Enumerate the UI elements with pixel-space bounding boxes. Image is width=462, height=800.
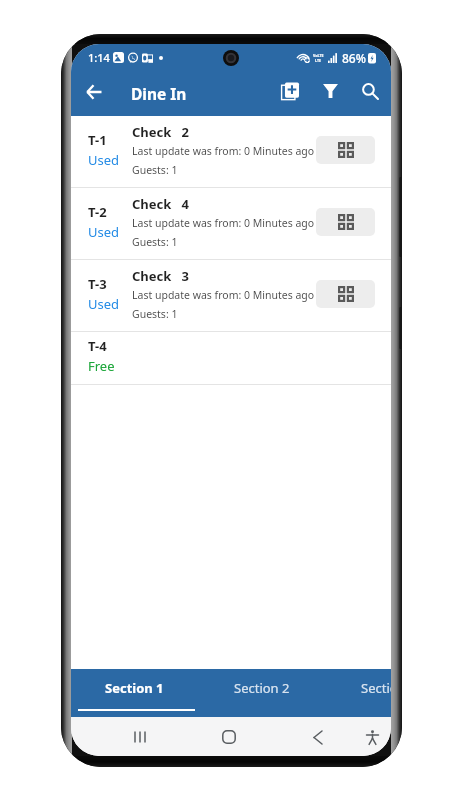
button[interactable]: Filter (310, 74, 350, 114)
button[interactable]: Home (212, 720, 246, 754)
button[interactable]: T-4 (71, 332, 391, 385)
staticText: Guests: 1 (132, 235, 178, 249)
button[interactable]: Recents (123, 720, 157, 754)
staticText: Guests: 1 (132, 307, 178, 321)
button[interactable]: Back (301, 720, 335, 754)
staticText: Used (88, 223, 120, 241)
button[interactable]: Accessibility (355, 720, 389, 754)
staticText: Last update was from: 0 Minutes ago (132, 216, 315, 230)
staticText: Check 4 (132, 195, 189, 213)
staticText: T-1 (88, 131, 107, 149)
button[interactable]: T-1 (71, 116, 391, 188)
staticText: Dine In (131, 83, 187, 104)
staticText: Check 2 (132, 123, 189, 141)
button[interactable]: Add (270, 74, 310, 114)
staticText: 86% (342, 50, 366, 66)
button[interactable]: Open table grid (316, 208, 375, 236)
staticText: Guests: 1 (132, 163, 178, 177)
button[interactable]: Open table grid (316, 280, 375, 308)
staticText: Used (88, 151, 120, 169)
button[interactable]: Search (350, 73, 391, 114)
staticText: Last update was from: 0 Minutes ago (132, 144, 315, 158)
staticText: Section 1 (105, 679, 164, 697)
staticText: Last update was from: 0 Minutes ago (132, 288, 315, 302)
button[interactable]: Back (71, 72, 115, 116)
staticText: 1:14 (88, 50, 110, 65)
staticText: Section 2 (234, 679, 290, 697)
staticText: VoLTE (313, 53, 324, 58)
button[interactable]: Section 3 (325, 669, 391, 717)
button[interactable]: T-2 (71, 188, 391, 260)
button[interactable]: Open table grid (316, 136, 375, 164)
staticText: T-4 (88, 337, 107, 355)
button[interactable]: Section 2 (198, 669, 325, 717)
staticText: Free (88, 357, 115, 375)
staticText: Check 3 (132, 267, 189, 285)
staticText: LTE (315, 58, 322, 63)
staticText: Section 3 (361, 679, 391, 697)
staticText: T-2 (88, 203, 107, 221)
staticText: Used (88, 295, 120, 313)
button[interactable]: Section 1 (71, 669, 198, 717)
button[interactable]: T-3 (71, 260, 391, 332)
staticText: T-3 (88, 275, 107, 293)
